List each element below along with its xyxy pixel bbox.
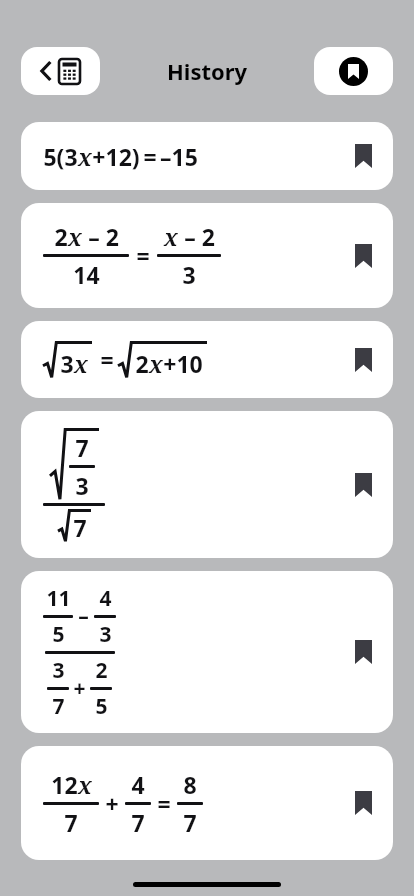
staticText: 7	[183, 807, 197, 838]
staticText: x	[74, 348, 88, 379]
staticText: 3	[182, 259, 196, 290]
staticText: 14	[73, 259, 100, 290]
staticText: =	[157, 788, 171, 819]
staticText: 4	[99, 584, 112, 613]
staticText: x	[68, 221, 82, 252]
staticText: 3	[99, 620, 112, 649]
staticText: 12	[51, 769, 78, 800]
staticText: +12)	[92, 141, 140, 172]
staticText: 2	[95, 656, 108, 685]
staticText: 7	[64, 807, 78, 838]
button[interactable]: Saved bookmarks	[314, 47, 393, 95]
staticText: +10	[163, 348, 203, 379]
staticText: 4	[131, 769, 145, 800]
staticText: 3	[52, 656, 65, 685]
staticText: 7	[75, 432, 89, 463]
button[interactable]: 11	[21, 571, 393, 733]
staticText: 5	[52, 620, 65, 649]
staticText: x	[78, 141, 92, 172]
staticText: =	[143, 141, 157, 172]
staticText: –	[78, 602, 89, 631]
staticText: 5	[95, 692, 108, 721]
staticText: – 2	[178, 221, 215, 252]
staticText: x	[149, 348, 163, 379]
button[interactable]: 2	[21, 203, 393, 308]
staticText: –15	[160, 141, 198, 172]
staticText: =	[136, 240, 150, 271]
staticText: +	[73, 674, 86, 703]
staticText: 5(3	[43, 141, 78, 172]
staticText: 3	[60, 348, 74, 379]
staticText: x	[164, 221, 178, 252]
staticText: 3	[75, 470, 89, 501]
staticText: 2	[135, 348, 149, 379]
staticText: 7	[73, 512, 87, 543]
staticText: – 2	[82, 221, 119, 252]
staticText: +	[105, 788, 119, 819]
button[interactable]: 3	[21, 321, 393, 398]
staticText: 8	[183, 769, 197, 800]
button[interactable]: 5(3	[21, 122, 393, 190]
staticText: 2	[54, 221, 68, 252]
staticText: =	[100, 344, 114, 375]
staticText: x	[78, 769, 92, 800]
staticText: 11	[46, 584, 71, 613]
button[interactable]: 12	[21, 746, 393, 860]
staticText: 7	[52, 692, 65, 721]
button[interactable]: Back to calculator	[21, 47, 100, 95]
button[interactable]: 7	[21, 411, 393, 558]
staticText: History	[167, 56, 248, 86]
staticText: 7	[131, 807, 145, 838]
